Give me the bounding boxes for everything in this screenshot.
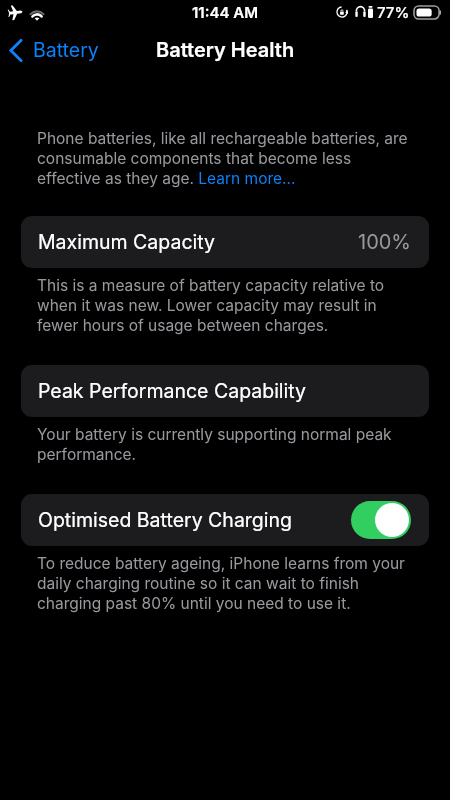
staticText: Phone batteries, like all rechargeable b… [37,128,413,188]
staticText: 77% [377,3,410,21]
staticText: Peak Performance Capability [38,379,307,403]
staticText: Battery [33,38,99,62]
button[interactable]: Back to Battery [0,24,107,76]
button[interactable]: Maximum Capacity [21,216,429,268]
staticText: Your battery is currently supporting nor… [37,424,413,464]
button[interactable]: Peak Performance Capability [21,365,429,417]
staticText: This is a measure of battery capacity re… [37,275,413,335]
staticText: To reduce battery ageing, iPhone learns … [37,553,413,613]
staticText: 11:44 AM [192,3,258,21]
button[interactable]: Learn more [162,168,256,188]
button[interactable]: Optimised Battery Charging toggle [351,501,411,539]
other: Rotation lock [336,6,348,18]
staticText: 100% [358,230,412,254]
staticText: Optimised Battery Charging [38,508,293,532]
button[interactable]: Optimised Battery Charging [21,494,429,546]
staticText: Maximum Capacity [38,230,215,254]
staticText: Battery Health [156,38,295,62]
